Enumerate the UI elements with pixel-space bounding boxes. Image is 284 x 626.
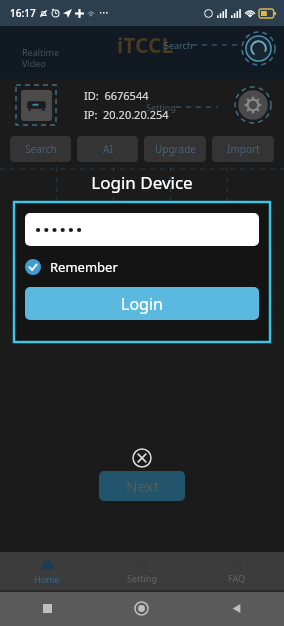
staticText: iTCCL xyxy=(117,31,174,60)
staticText: AI xyxy=(103,142,113,156)
button[interactable]: Home xyxy=(94,590,189,626)
button[interactable]: Back xyxy=(189,590,284,626)
button[interactable]: Upgrade xyxy=(144,136,206,162)
button[interactable]: Close xyxy=(132,448,152,468)
staticText: Home xyxy=(34,573,60,585)
button[interactable]: Search xyxy=(10,136,71,162)
button[interactable]: Login xyxy=(25,287,259,320)
button[interactable]: Settings xyxy=(234,86,272,124)
button[interactable]: Remember xyxy=(25,258,118,276)
staticText: ⋯ xyxy=(99,7,109,19)
staticText: IP: 20.20.20.254 xyxy=(84,107,169,122)
staticText: Setting xyxy=(127,572,157,584)
staticText: Import xyxy=(227,142,260,156)
button[interactable]: Home xyxy=(0,552,94,590)
button[interactable]: Next xyxy=(99,471,185,501)
staticText: Login Device xyxy=(91,171,193,194)
staticText: Remember xyxy=(50,258,118,276)
staticText: Login xyxy=(121,293,163,315)
button[interactable]: Recents xyxy=(0,590,94,626)
staticText: Upgrade xyxy=(155,142,196,156)
button[interactable]: Refresh search xyxy=(241,31,276,66)
button[interactable]: Import xyxy=(212,136,274,162)
staticText: Setting xyxy=(146,101,176,113)
staticText: Search xyxy=(25,142,57,156)
button[interactable]: AI xyxy=(77,136,138,162)
staticText: 16:17 xyxy=(10,6,36,20)
button[interactable]: Device xyxy=(16,85,56,125)
button[interactable]: Password xyxy=(25,213,259,246)
staticText: ID: 6676544 xyxy=(84,88,149,103)
button[interactable]: Setting xyxy=(94,552,189,590)
staticText: Next xyxy=(126,476,159,496)
staticText: Search xyxy=(164,39,193,51)
staticText: FAQ xyxy=(228,572,246,584)
button[interactable]: FAQ xyxy=(189,552,284,590)
staticText: Realtime Video xyxy=(22,46,60,69)
